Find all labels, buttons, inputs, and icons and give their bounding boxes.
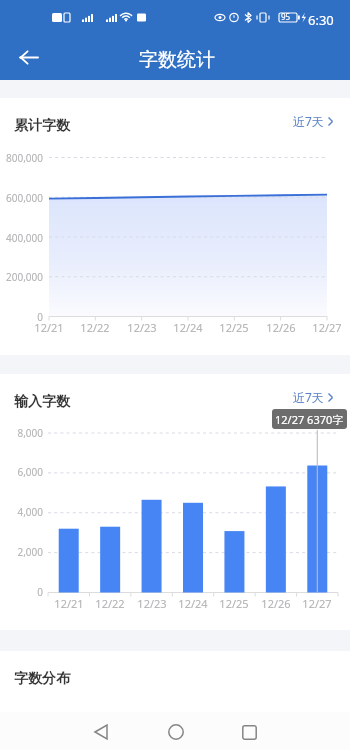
button[interactable]: Back (8, 37, 49, 78)
staticText: 12/24 (174, 596, 212, 611)
button[interactable]: Home (152, 712, 199, 750)
staticText: 12/25 (215, 320, 253, 335)
button[interactable]: 近7天 (293, 113, 333, 129)
staticText: 12/22 (91, 596, 129, 611)
staticText: 400,000 (2, 231, 43, 245)
staticText: 12/27 6370字 (275, 412, 344, 427)
staticText: 12/21 (50, 596, 88, 611)
staticText: 12/27 (298, 596, 336, 611)
staticText: 12/26 (262, 320, 300, 335)
staticText: 输入字数 (14, 393, 70, 411)
staticText: 800,000 (2, 151, 43, 165)
staticText: 600,000 (2, 191, 43, 205)
button[interactable]: 近7天 (293, 389, 333, 405)
staticText: 近7天 (293, 389, 324, 405)
staticText: 6,000 (2, 465, 43, 479)
staticText: 字数分布 (14, 670, 70, 688)
staticText: 12/26 (257, 596, 295, 611)
staticText: 0 (2, 310, 43, 324)
button[interactable]: Back (77, 712, 124, 750)
staticText: 12/24 (169, 320, 207, 335)
staticText: 12/22 (76, 320, 114, 335)
staticText: 累计字数 (14, 117, 70, 135)
staticText: 12/25 (215, 596, 253, 611)
staticText: 4,000 (2, 505, 43, 519)
staticText: 近7天 (293, 113, 324, 129)
staticText: 8,000 (2, 426, 43, 440)
staticText: 字数统计 (139, 48, 215, 72)
staticText: 200,000 (2, 270, 43, 284)
staticText: 95 (281, 11, 291, 22)
staticText: 2,000 (2, 545, 43, 559)
staticText: 12/21 (30, 320, 68, 335)
staticText: 12/23 (133, 596, 171, 611)
staticText: 0 (2, 585, 43, 599)
staticText: 12/27 (308, 320, 346, 335)
staticText: 6:30 (308, 11, 334, 29)
staticText: 12/23 (123, 320, 161, 335)
button[interactable]: Recents (226, 712, 273, 750)
